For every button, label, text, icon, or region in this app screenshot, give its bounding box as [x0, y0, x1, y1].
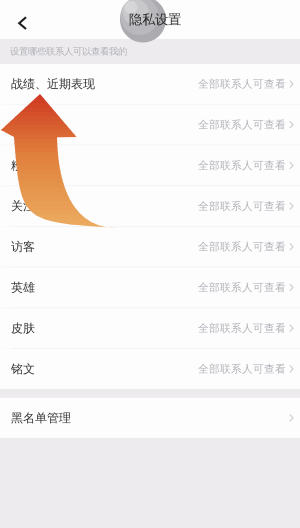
button[interactable]: 访客 [0, 227, 300, 267]
staticText: 黑名单管理 [11, 410, 71, 425]
button[interactable]: 英雄 [0, 267, 300, 307]
staticText: 英雄 [11, 280, 35, 295]
staticText: 全部联系人可查看 [198, 159, 286, 172]
staticText: 隐私设置 [129, 11, 181, 28]
staticText: 全部联系人可查看 [198, 240, 286, 253]
button[interactable]: 上线提醒 [0, 105, 300, 145]
button[interactable]: 黑名单管理 [0, 398, 300, 438]
button[interactable]: 关注 [0, 186, 300, 226]
staticText: 关注 [11, 199, 35, 213]
staticText: 全部联系人可查看 [198, 281, 286, 294]
staticText: 上线提醒 [11, 117, 59, 132]
staticText: 全部联系人可查看 [198, 77, 286, 90]
staticText: 设置哪些联系人可以查看我的 [10, 46, 127, 57]
staticText: 粉丝 [11, 158, 35, 173]
staticText: 访客 [11, 239, 35, 254]
button[interactable]: 战绩、近期表现 [0, 64, 300, 104]
staticText: 全部联系人可查看 [198, 118, 286, 131]
staticText: 铭文 [11, 361, 35, 376]
staticText: 全部联系人可查看 [198, 362, 286, 375]
staticText: 全部联系人可查看 [198, 322, 286, 335]
button[interactable]: 铭文 [0, 349, 300, 389]
button[interactable]: Back [0, 0, 40, 39]
button[interactable]: 皮肤 [0, 308, 300, 348]
button[interactable]: 粉丝 [0, 145, 300, 185]
staticText: 战绩、近期表现 [11, 77, 95, 91]
staticText: 皮肤 [11, 321, 35, 335]
staticText: 全部联系人可查看 [198, 199, 286, 213]
